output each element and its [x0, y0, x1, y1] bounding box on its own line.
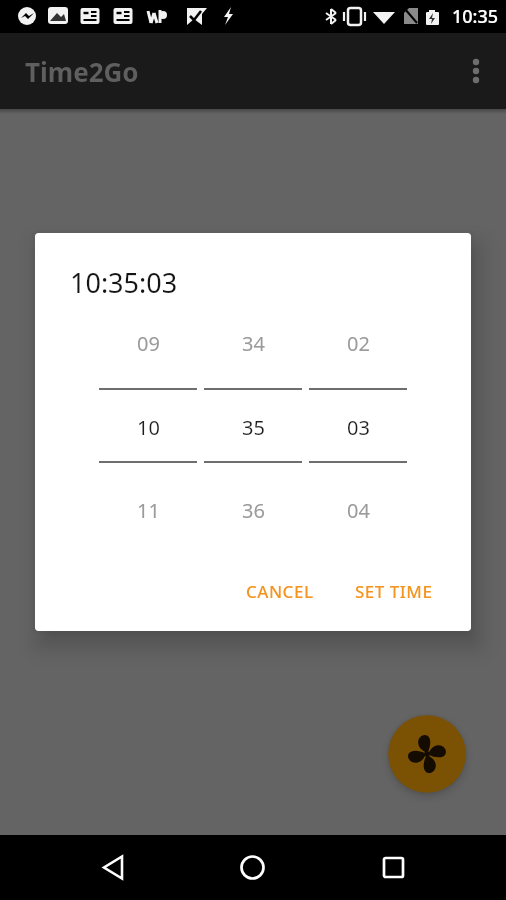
staticText: 10 [137, 414, 160, 441]
staticText: SET TIME [355, 580, 433, 603]
button[interactable] [388, 715, 466, 793]
staticText: 02 [347, 330, 370, 357]
staticText: 35 [242, 414, 265, 441]
staticText: 10:35 [452, 4, 499, 29]
button[interactable] [100, 854, 127, 881]
staticText: CANCEL [246, 580, 314, 603]
staticText: 11 [137, 497, 160, 524]
button[interactable]: SET TIME [336, 571, 452, 611]
staticText: 03 [347, 414, 370, 441]
button[interactable] [380, 854, 407, 881]
staticText: 09 [137, 330, 160, 357]
staticText: 10:35:03 [70, 264, 178, 301]
button[interactable] [239, 854, 266, 881]
button[interactable]: 34 [204, 310, 302, 543]
button[interactable] [460, 55, 492, 87]
button[interactable]: CANCEL [222, 571, 338, 611]
staticText: 34 [242, 330, 265, 357]
staticText: 04 [347, 497, 370, 524]
button[interactable]: 09 [99, 310, 197, 543]
staticText: 36 [242, 497, 265, 524]
button[interactable]: 02 [309, 310, 407, 543]
staticText: Time2Go [25, 54, 139, 89]
